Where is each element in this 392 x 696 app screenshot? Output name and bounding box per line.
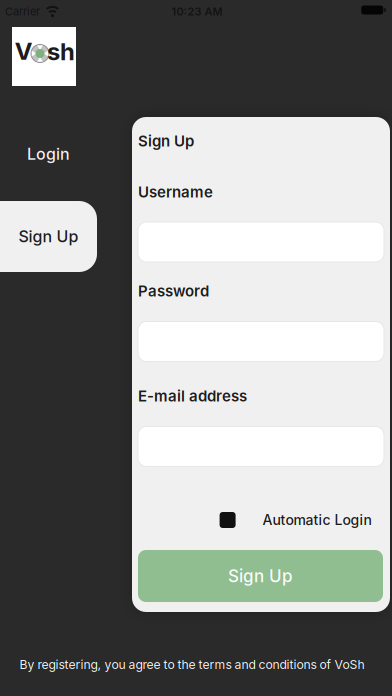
button[interactable]: Automatic Login bbox=[220, 505, 382, 535]
button[interactable]: Username bbox=[138, 222, 384, 262]
staticText: V bbox=[15, 36, 33, 65]
staticText: Sign Up bbox=[138, 132, 194, 150]
button[interactable]: Sign Up bbox=[0, 201, 97, 272]
button[interactable]: Sign Up bbox=[138, 550, 383, 602]
button[interactable]: Login bbox=[0, 126, 97, 182]
staticText: Username bbox=[138, 183, 213, 201]
staticText: E-mail address bbox=[138, 387, 247, 405]
staticText: Automatic Login bbox=[263, 511, 372, 528]
staticText: Carrier bbox=[5, 5, 40, 18]
staticText: 10:23 AM bbox=[171, 5, 222, 18]
staticText: Sign Up bbox=[18, 227, 78, 246]
button[interactable]: Password bbox=[138, 321, 384, 361]
staticText: sh bbox=[47, 37, 75, 66]
staticText: Login bbox=[27, 144, 70, 164]
staticText: Sign Up bbox=[228, 566, 293, 586]
button[interactable]: E-mail address bbox=[138, 426, 384, 466]
staticText: Password bbox=[138, 282, 209, 300]
staticText: By registering, you agree to the terms a… bbox=[19, 657, 364, 672]
